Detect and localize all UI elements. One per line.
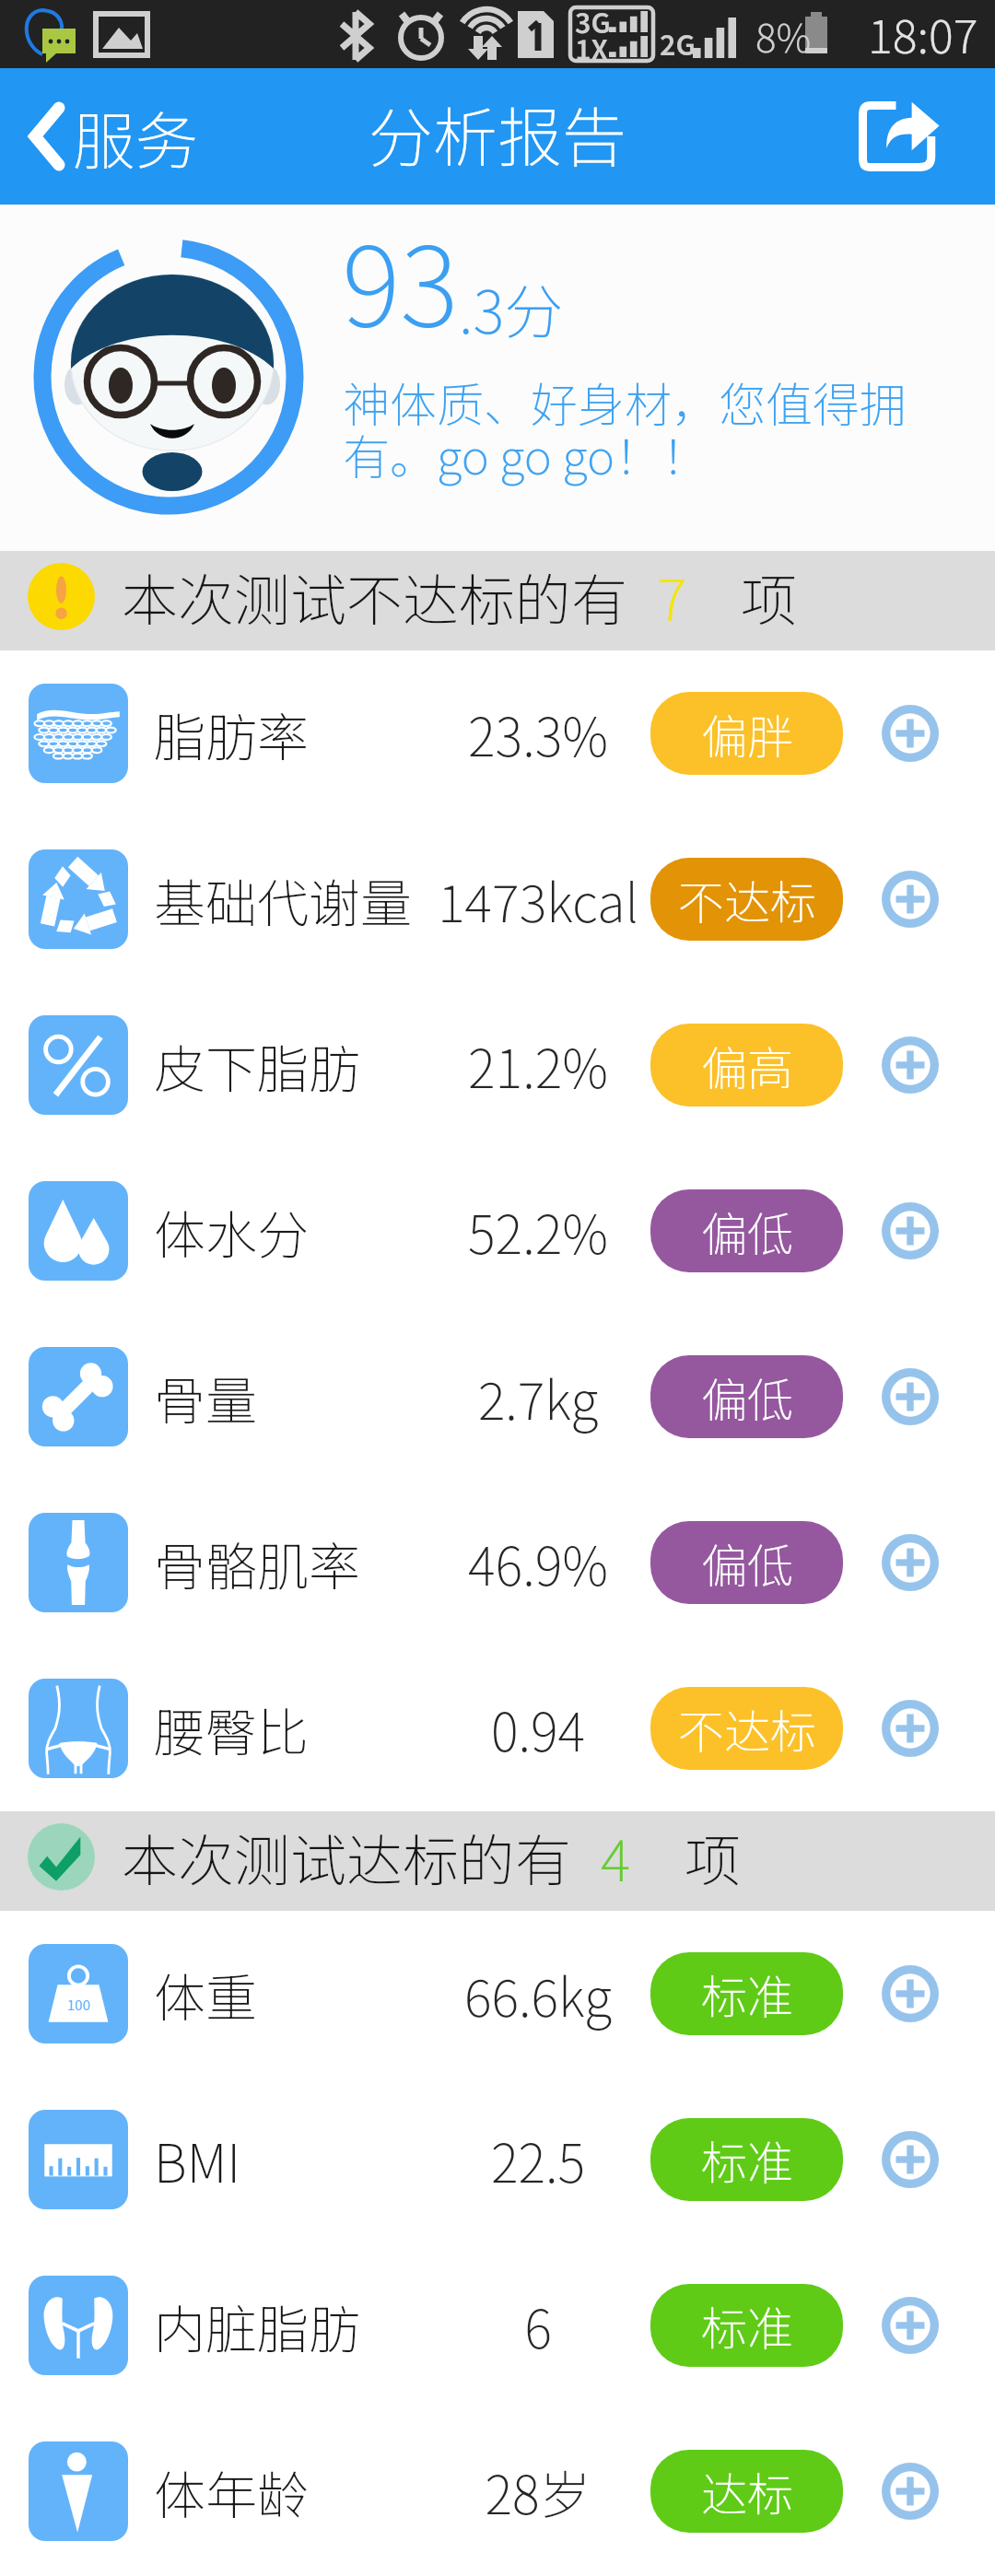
staticText: 分析报告 xyxy=(369,87,626,180)
staticText: 不达标 xyxy=(678,1695,816,1762)
button[interactable]: 体年龄 xyxy=(0,2408,995,2574)
button[interactable]: Show details for 体重 xyxy=(866,1950,954,2038)
staticText: 偏低 xyxy=(701,1529,793,1596)
staticText: 偏胖 xyxy=(701,700,793,767)
button[interactable]: Show details for 体水分 xyxy=(866,1187,954,1275)
button[interactable]: 不达标 xyxy=(650,858,843,941)
button[interactable]: BMI xyxy=(0,2077,995,2242)
button[interactable]: 骨骼肌率 xyxy=(0,1480,995,1645)
button[interactable]: 达标 xyxy=(650,2450,843,2533)
button[interactable]: 不达标 xyxy=(650,1687,843,1770)
button[interactable]: Show details for 脂肪率 xyxy=(866,689,954,778)
staticText: 本次测试达标的有 xyxy=(122,1816,572,1897)
staticText: 脂肪率 xyxy=(154,697,309,771)
button[interactable]: 偏低 xyxy=(650,1189,843,1272)
button[interactable]: 100 xyxy=(0,1911,995,2077)
button[interactable]: 偏高 xyxy=(650,1024,843,1107)
staticText: 达标 xyxy=(701,2458,793,2524)
staticText: 神体质、好身材，您值得拥 有。go go go！！ xyxy=(343,368,907,487)
button[interactable]: Show details for 内脏脂肪 xyxy=(866,2281,954,2370)
staticText: 皮下脂肪 xyxy=(154,1028,360,1103)
staticText: BMI xyxy=(154,2123,241,2197)
staticText: 骨骼肌率 xyxy=(154,1526,360,1600)
staticText: 1X xyxy=(575,28,608,67)
staticText: 骨量 xyxy=(154,1360,257,1434)
staticText: 52.2% xyxy=(354,1194,722,1269)
button[interactable]: 脂肪率 xyxy=(0,650,995,816)
button[interactable]: 基础代谢量 xyxy=(0,816,995,982)
staticText: 内脏脂肪 xyxy=(154,2289,360,2363)
button[interactable]: 内脏脂肪 xyxy=(0,2242,995,2408)
staticText: 93 xyxy=(342,198,459,358)
staticText: 66.6kg xyxy=(354,1957,722,2032)
staticText: 8% xyxy=(755,7,812,64)
staticText: 18:07 xyxy=(868,0,978,66)
staticText: 3G xyxy=(575,1,611,41)
button[interactable]: 腰臀比 xyxy=(0,1645,995,1811)
button[interactable]: 服务 xyxy=(0,73,221,200)
button[interactable]: 偏胖 xyxy=(650,692,843,775)
staticText: 46.9% xyxy=(354,1526,722,1600)
button[interactable]: 偏低 xyxy=(650,1355,843,1438)
staticText: 腰臀比 xyxy=(154,1692,309,1766)
button[interactable]: 体水分 xyxy=(0,1148,995,1314)
button[interactable]: 标准 xyxy=(650,2284,843,2367)
staticText: 4 xyxy=(601,1816,631,1897)
staticText: 项 xyxy=(685,1816,742,1897)
staticText: 偏低 xyxy=(701,1364,793,1430)
staticText: 偏低 xyxy=(701,1198,793,1264)
staticText: 23.3% xyxy=(354,697,722,771)
staticText: 基础代谢量 xyxy=(154,862,412,937)
staticText: 标准 xyxy=(701,2292,793,2359)
button[interactable]: Show details for 体年龄 xyxy=(866,2447,954,2535)
staticText: .3分 xyxy=(459,265,564,351)
staticText: 100 xyxy=(67,1995,90,2015)
staticText: 本次测试不达标的有 xyxy=(122,556,628,637)
button[interactable]: Share xyxy=(831,77,995,195)
button[interactable]: Show details for 基础代谢量 xyxy=(866,855,954,943)
button[interactable]: 皮下脂肪 xyxy=(0,982,995,1148)
staticText: 服务 xyxy=(73,91,199,181)
staticText: 项 xyxy=(741,556,798,637)
staticText: 不达标 xyxy=(678,866,816,932)
staticText: 2.7kg xyxy=(354,1360,722,1434)
staticText: 标准 xyxy=(701,2126,793,2193)
staticText: 2G xyxy=(660,23,696,63)
staticText: 21.2% xyxy=(354,1028,722,1103)
staticText: 偏高 xyxy=(701,1032,793,1098)
staticText: 体重 xyxy=(154,1957,257,2032)
staticText: 6 xyxy=(354,2289,722,2363)
button[interactable]: Show details for BMI xyxy=(866,2115,954,2204)
button[interactable]: Show details for 骨量 xyxy=(866,1352,954,1441)
button[interactable]: Show details for 皮下脂肪 xyxy=(866,1021,954,1109)
button[interactable]: 骨量 xyxy=(0,1314,995,1480)
staticText: 标准 xyxy=(701,1961,793,2027)
button[interactable]: 标准 xyxy=(650,2118,843,2201)
button[interactable]: 标准 xyxy=(650,1952,843,2035)
staticText: 28岁 xyxy=(354,2454,722,2529)
staticText: 7 xyxy=(657,556,687,637)
button[interactable]: Show details for 腰臀比 xyxy=(866,1684,954,1773)
staticText: 1473kcal xyxy=(354,862,722,937)
staticText: 体水分 xyxy=(154,1194,309,1269)
button[interactable]: 偏低 xyxy=(650,1521,843,1604)
staticText: 22.5 xyxy=(354,2123,722,2197)
staticText: 0.94 xyxy=(354,1692,722,1766)
staticText: 体年龄 xyxy=(154,2454,309,2529)
button[interactable]: Show details for 骨骼肌率 xyxy=(866,1518,954,1607)
